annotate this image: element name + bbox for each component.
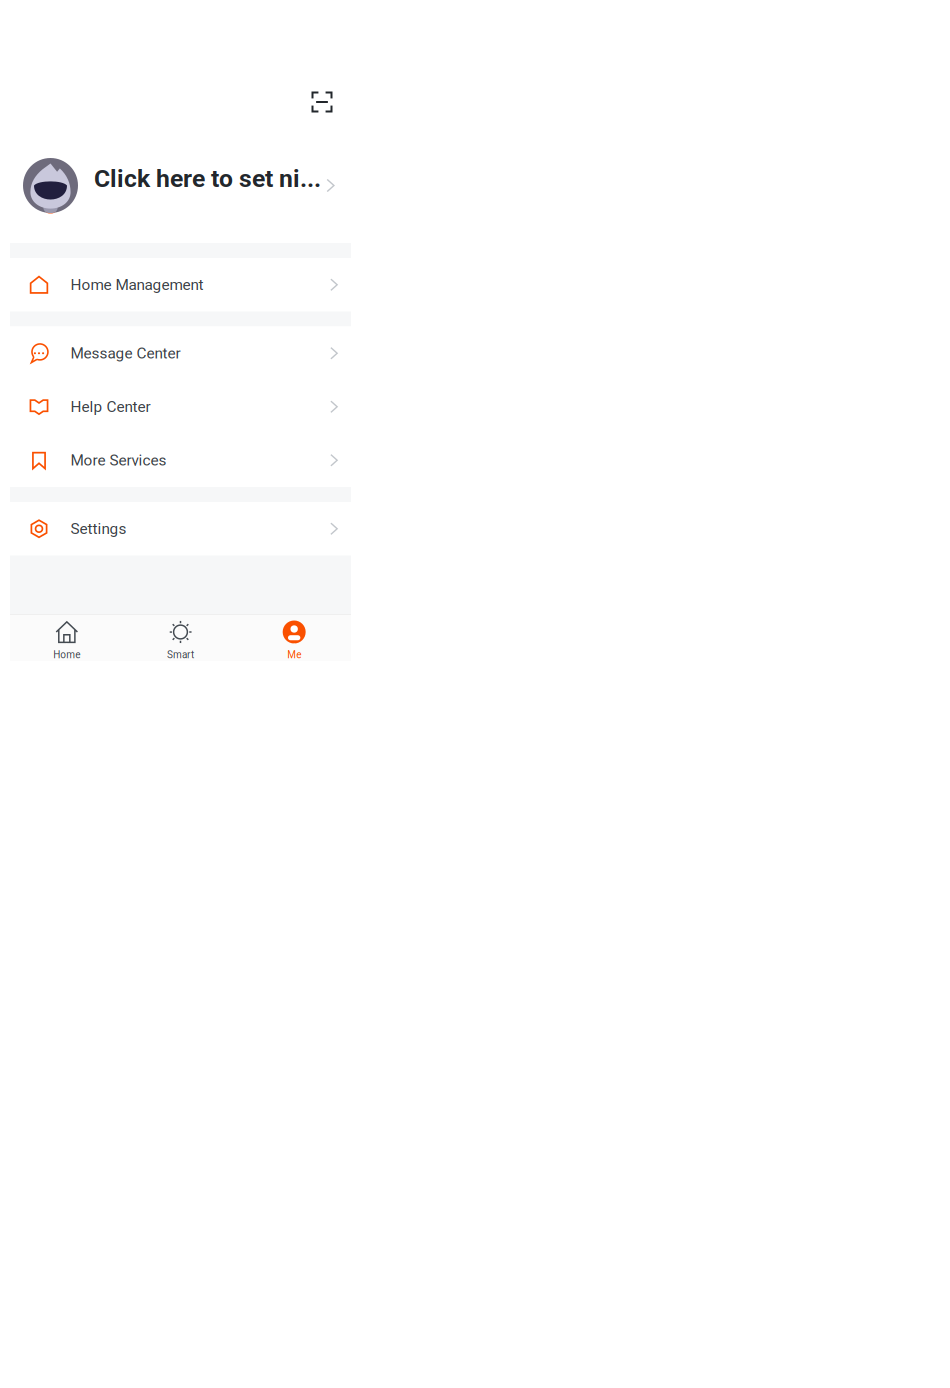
button[interactable]: Message Center <box>10 326 351 380</box>
staticText: Me <box>287 649 301 661</box>
button[interactable]: More Services <box>10 433 351 487</box>
button[interactable]: Help Center <box>10 380 351 433</box>
staticText: Home Management <box>70 276 203 294</box>
staticText: More Services <box>70 451 166 469</box>
button[interactable]: Home <box>10 615 124 661</box>
button[interactable]: Home Management <box>10 258 351 311</box>
button[interactable]: Me <box>237 615 351 661</box>
staticText: Settings <box>70 520 126 538</box>
button[interactable]: Smart <box>124 615 237 661</box>
button[interactable]: Click here to set ni... <box>10 157 351 214</box>
staticText: Help Center <box>70 398 150 416</box>
staticText: Click here to set ni... <box>94 164 321 193</box>
staticText: Message Center <box>70 344 180 362</box>
staticText: Smart <box>167 649 194 661</box>
button[interactable]: Scan QR code <box>302 82 342 122</box>
button[interactable]: Settings <box>10 502 351 555</box>
staticText: Home <box>53 649 80 661</box>
